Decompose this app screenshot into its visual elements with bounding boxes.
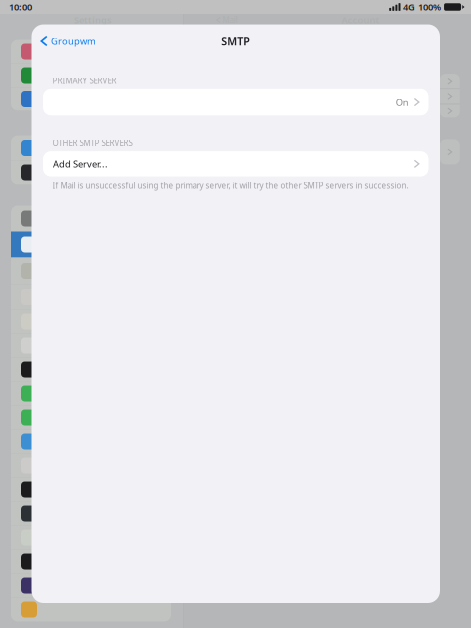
button[interactable]: Groupwm [31, 27, 104, 55]
staticText: Mail [222, 15, 237, 25]
staticText: OTHER SMTP SERVERS [52, 137, 132, 148]
staticText: 100% [418, 1, 441, 13]
staticText: SMTP [221, 34, 250, 48]
staticText: 4G [403, 1, 415, 13]
staticText: PRIMARY SERVER [52, 75, 116, 86]
staticText: Add Server... [53, 158, 108, 170]
staticText: Account [341, 14, 379, 26]
staticText: 10:00 [9, 1, 32, 13]
staticText: Settings [74, 14, 112, 26]
staticText: If Mail is unsuccessful using the primar… [52, 180, 408, 191]
staticText: Groupwm [51, 35, 96, 47]
button[interactable]: Add Server... [43, 151, 428, 177]
staticText: On [396, 96, 409, 108]
button[interactable]: On [43, 89, 428, 115]
